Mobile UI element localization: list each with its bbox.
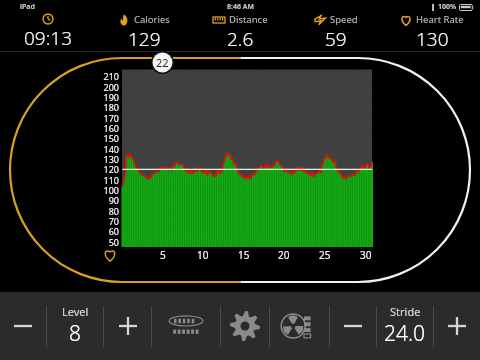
staticText: 90 — [108, 194, 119, 206]
staticText: 210 — [103, 70, 119, 82]
button[interactable]: Distance — [192, 13, 288, 51]
staticText: 8:46 AM — [227, 2, 254, 12]
staticText: 170 — [103, 112, 119, 124]
staticText: 180 — [103, 101, 119, 113]
staticText: 15 — [238, 248, 250, 262]
staticText: 10 — [197, 248, 209, 262]
staticText: 50 — [108, 236, 119, 248]
staticText: 120 — [103, 163, 119, 175]
staticText: 22 — [156, 55, 169, 70]
button[interactable]: Lap marker 22 — [151, 51, 174, 74]
button[interactable]: Settings — [221, 292, 269, 360]
staticText: 130 — [103, 153, 119, 165]
button[interactable]: Smart Stride — [152, 292, 220, 360]
staticText: Calories — [134, 13, 170, 26]
staticText: 8 — [69, 319, 81, 348]
staticText: 150 — [103, 132, 119, 144]
staticText: Distance — [229, 13, 268, 26]
staticText: 160 — [103, 122, 119, 134]
staticText: Stride — [390, 304, 421, 319]
staticText: 100% — [438, 2, 457, 12]
staticText: 20 — [278, 248, 290, 262]
staticText: 09:13 — [24, 25, 73, 51]
staticText: 25 — [319, 248, 331, 262]
button[interactable]: Heart Rate — [384, 13, 480, 51]
staticText: Heart Rate — [416, 13, 464, 26]
button[interactable]: Decrease Stride — [330, 292, 376, 360]
button[interactable]: Level — [47, 292, 103, 360]
staticText: 200 — [103, 81, 119, 93]
button[interactable]: 09:13 — [0, 13, 96, 51]
staticText: Level — [62, 304, 89, 319]
staticText: 140 — [103, 143, 119, 155]
staticText: 5 — [160, 248, 166, 262]
staticText: 190 — [103, 91, 119, 103]
staticText: 2.6 — [227, 26, 254, 51]
staticText: 24.0 — [384, 319, 426, 348]
button[interactable]: Increase Stride — [434, 292, 480, 360]
staticText: 30 — [360, 248, 372, 262]
staticText: Speed — [330, 13, 358, 26]
button[interactable]: Stride — [377, 292, 433, 360]
button[interactable]: Calories — [96, 13, 192, 51]
button[interactable]: Speed — [288, 13, 384, 51]
staticText: 130 — [416, 26, 449, 51]
button[interactable]: Fan and display — [270, 292, 329, 360]
staticText: 110 — [103, 174, 119, 186]
button[interactable]: Decrease Level — [0, 292, 46, 360]
button[interactable]: Increase Level — [104, 292, 151, 360]
staticText: iPad — [20, 2, 35, 12]
staticText: 59 — [325, 26, 347, 51]
staticText: 80 — [108, 205, 119, 217]
staticText: 60 — [108, 225, 119, 237]
staticText: 100 — [103, 184, 119, 196]
staticText: 129 — [128, 26, 161, 51]
staticText: 70 — [108, 215, 119, 227]
